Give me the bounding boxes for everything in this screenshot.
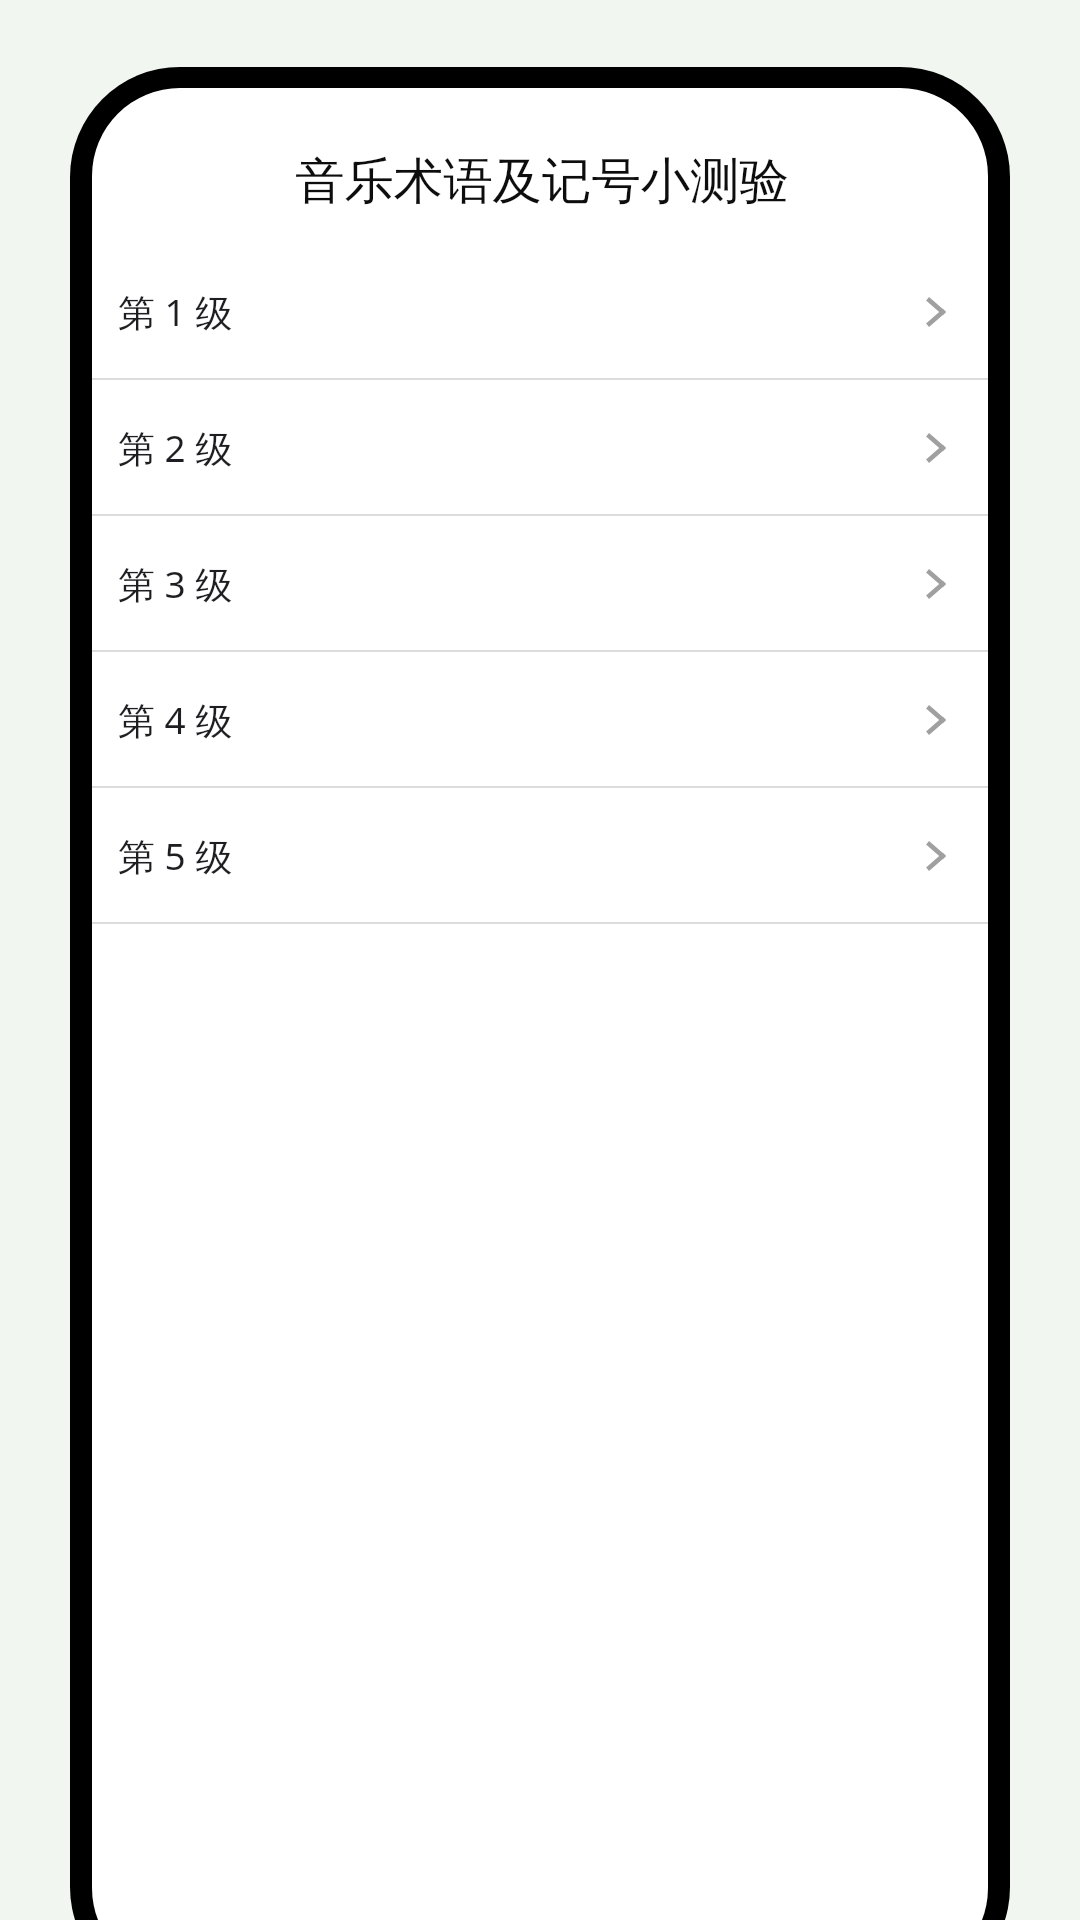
other: Open level 5 bbox=[918, 837, 954, 873]
other: Open level 3 bbox=[918, 565, 954, 601]
staticText: 音乐术语及记号小测验 bbox=[295, 150, 789, 212]
button[interactable]: 第 1 级 bbox=[92, 244, 988, 378]
staticText: 第 1 级 bbox=[118, 286, 233, 337]
other: Open level 2 bbox=[918, 429, 954, 465]
button[interactable]: 第 2 级 bbox=[92, 380, 988, 514]
other: Open level 4 bbox=[918, 701, 954, 737]
staticText: 第 2 级 bbox=[118, 422, 233, 473]
other: Open level 1 bbox=[918, 293, 954, 329]
button[interactable]: 第 3 级 bbox=[92, 516, 988, 650]
staticText: 第 5 级 bbox=[118, 830, 233, 881]
button[interactable]: 第 5 级 bbox=[92, 788, 988, 922]
button[interactable]: 第 4 级 bbox=[92, 652, 988, 786]
staticText: 第 3 级 bbox=[118, 558, 233, 609]
staticText: 第 4 级 bbox=[118, 694, 233, 745]
